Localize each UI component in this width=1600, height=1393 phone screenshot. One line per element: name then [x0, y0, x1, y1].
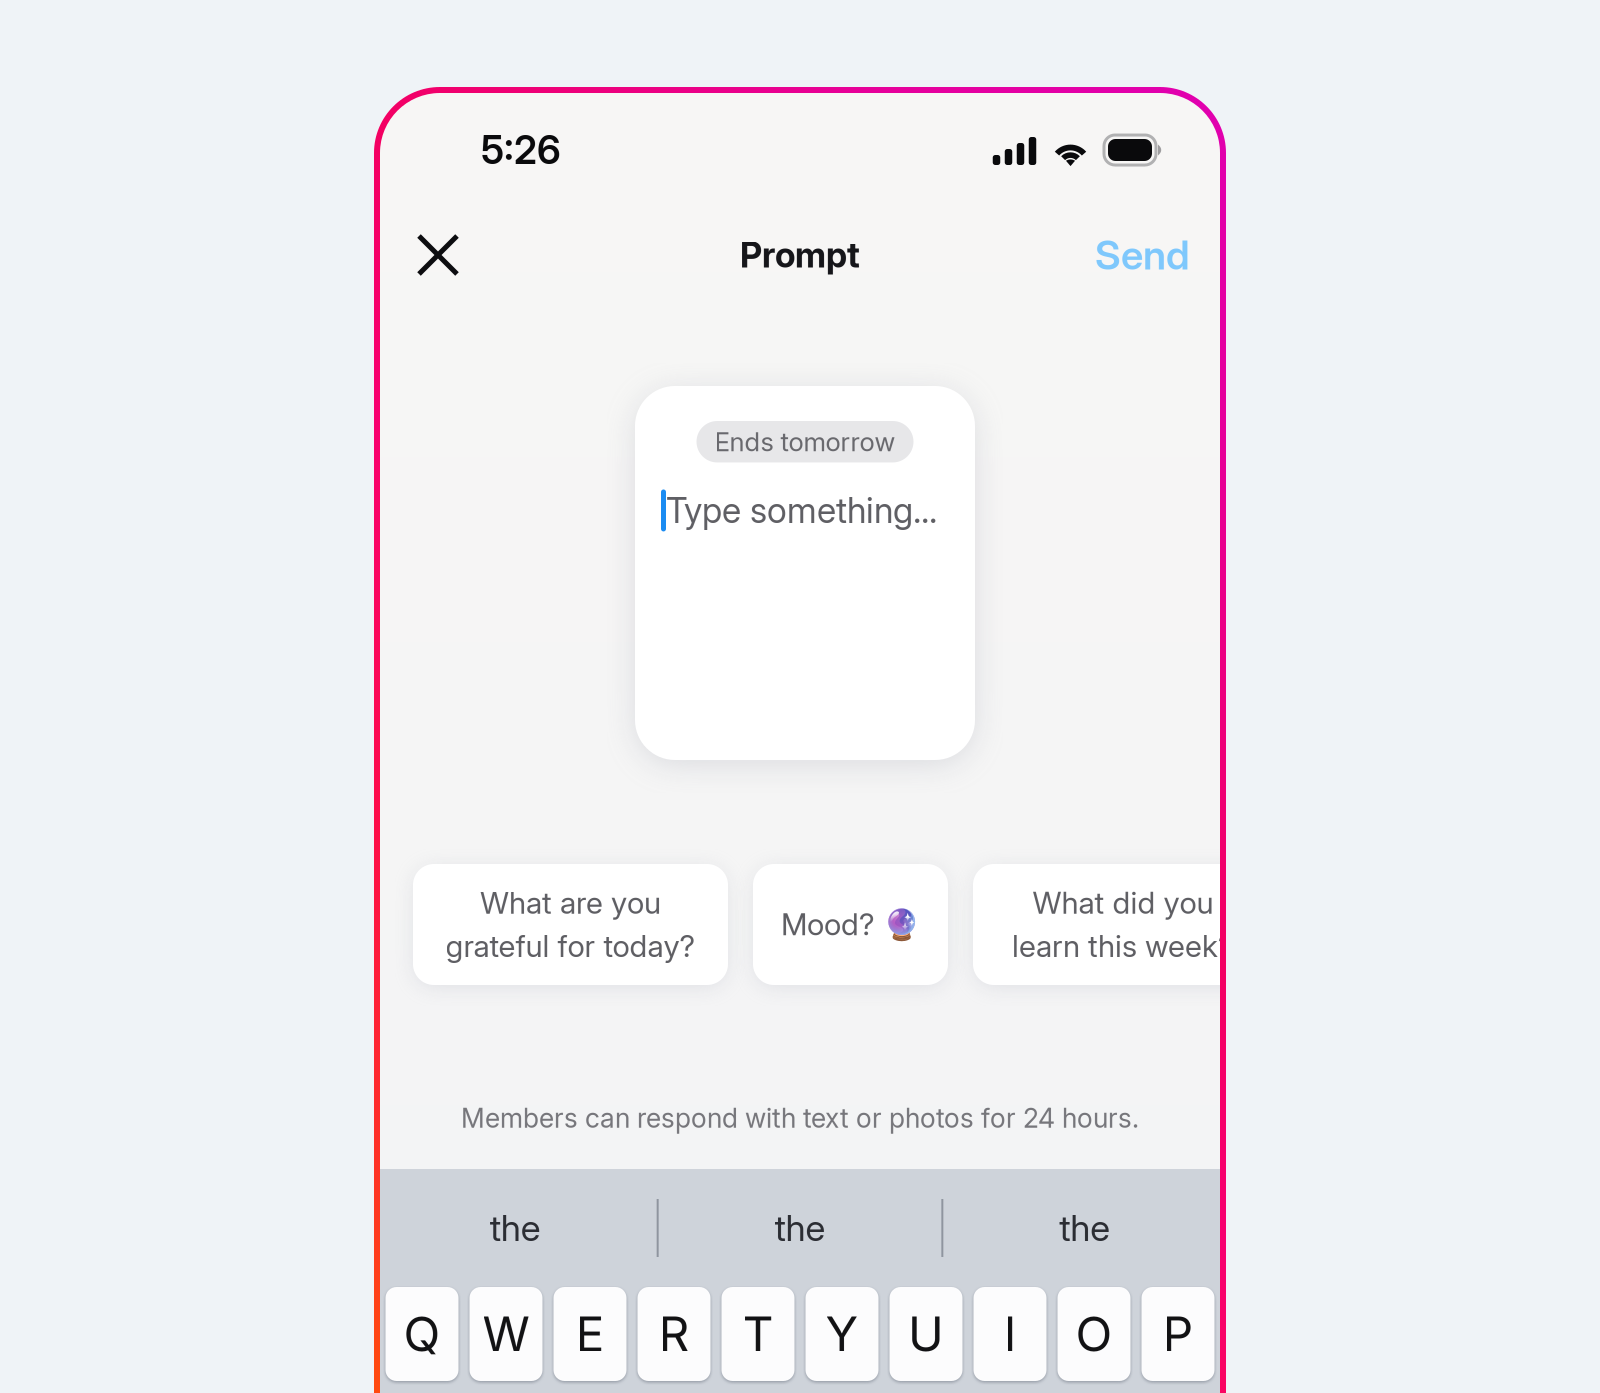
staticText: learn this week? — [1012, 928, 1234, 964]
button[interactable]: Ends tomorrow — [635, 386, 975, 760]
staticText: Type something... — [666, 489, 937, 531]
button[interactable]: What are you — [413, 864, 728, 985]
button[interactable]: P — [1141, 1287, 1214, 1381]
staticText: Q — [403, 1305, 440, 1363]
staticText: Mood? 🔮 — [781, 906, 920, 943]
button[interactable]: W — [469, 1287, 542, 1381]
button[interactable]: the — [374, 1169, 657, 1287]
staticText: What are you — [480, 885, 661, 921]
staticText: U — [908, 1305, 944, 1363]
staticText: I — [1003, 1305, 1016, 1363]
button[interactable]: E — [553, 1287, 626, 1381]
button[interactable]: the — [943, 1169, 1226, 1287]
staticText: W — [482, 1305, 529, 1363]
button[interactable]: What did you — [973, 864, 1273, 985]
staticText: the — [1059, 1206, 1110, 1250]
staticText: Members can respond with text or photos … — [461, 1102, 1139, 1134]
staticText: Y — [825, 1305, 858, 1363]
staticText: T — [742, 1305, 773, 1363]
button[interactable]: Y — [805, 1287, 878, 1381]
staticText: E — [575, 1305, 604, 1363]
button[interactable]: T — [721, 1287, 794, 1381]
staticText: grateful for today? — [445, 928, 695, 964]
button[interactable]: O — [1057, 1287, 1130, 1381]
staticText: Ends tomorrow — [714, 426, 895, 457]
staticText: R — [658, 1305, 689, 1363]
staticText: What did you — [1032, 885, 1213, 921]
staticText: Send — [1095, 231, 1190, 279]
button[interactable]: Send — [1095, 223, 1190, 287]
button[interactable]: R — [637, 1287, 710, 1381]
staticText: P — [1162, 1305, 1193, 1363]
staticText: O — [1075, 1305, 1112, 1363]
staticText: Prompt — [740, 234, 860, 276]
button[interactable]: Mood? 🔮 — [753, 864, 948, 985]
button[interactable]: I — [973, 1287, 1046, 1381]
button[interactable]: U — [889, 1287, 962, 1381]
staticText: 5:26 — [481, 127, 561, 173]
staticText: the — [774, 1206, 825, 1250]
button[interactable]: Q — [385, 1287, 458, 1381]
staticText: the — [490, 1206, 541, 1250]
button[interactable]: Close — [406, 223, 470, 287]
button[interactable]: the — [659, 1169, 941, 1287]
